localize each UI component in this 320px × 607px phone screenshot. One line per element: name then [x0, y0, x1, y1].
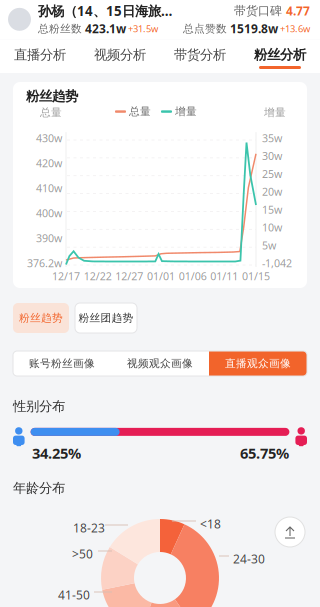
- staticText: 12/17: [52, 269, 80, 283]
- staticText: +13.6w: [278, 22, 310, 35]
- staticText: 孙杨（14、15日海旅…: [38, 2, 172, 20]
- button[interactable]: 粉丝趋势: [13, 303, 69, 333]
- staticText: 视频分析: [94, 47, 146, 63]
- staticText: 带货口碑: [234, 3, 286, 18]
- staticText: 视频观众画像: [127, 357, 193, 370]
- staticText: 15w: [262, 202, 282, 217]
- button[interactable]: 粉丝分析: [240, 40, 320, 73]
- staticText: 12/27: [115, 269, 143, 283]
- button[interactable]: 带货分析: [160, 40, 240, 73]
- staticText: 01/15: [242, 269, 270, 283]
- staticText: 直播分析: [14, 47, 66, 63]
- staticText: 1519.8w: [230, 21, 278, 37]
- staticText: 390w: [36, 231, 62, 245]
- button[interactable]: 直播分析: [0, 40, 80, 73]
- staticText: 30w: [262, 149, 282, 163]
- staticText: 430w: [36, 131, 62, 145]
- staticText: 总量: [40, 106, 62, 119]
- staticText: 400w: [36, 206, 62, 220]
- staticText: >50: [72, 546, 93, 562]
- button[interactable]: Back to top: [275, 517, 305, 547]
- staticText: 年龄分布: [13, 480, 65, 496]
- staticText: 账号粉丝画像: [29, 357, 95, 370]
- staticText: 增量: [264, 106, 286, 119]
- staticText: 420w: [36, 156, 62, 170]
- staticText: 粉丝趋势: [26, 88, 78, 104]
- staticText: 10w: [262, 220, 282, 234]
- button[interactable]: 视频分析: [80, 40, 160, 73]
- staticText: <18: [200, 516, 221, 532]
- staticText: 18-23: [73, 520, 105, 536]
- staticText: 65.75%: [240, 443, 289, 463]
- staticText: 性别分布: [13, 398, 65, 414]
- staticText: 24-30: [233, 551, 265, 567]
- staticText: 粉丝分析: [254, 47, 306, 63]
- staticText: 423.1w: [85, 21, 126, 37]
- staticText: 带货分析: [174, 47, 226, 63]
- staticText: 01/01: [147, 269, 175, 283]
- staticText: 34.25%: [32, 443, 81, 463]
- staticText: 4.77: [286, 3, 310, 19]
- staticText: +31.5w: [126, 22, 158, 35]
- staticText: -1,042: [262, 256, 292, 270]
- staticText: 25w: [262, 167, 282, 181]
- staticText: 直播观众画像: [225, 357, 291, 370]
- staticText: 增量: [175, 105, 197, 118]
- staticText: 20w: [262, 185, 282, 199]
- button[interactable]: 账号粉丝画像: [13, 351, 111, 376]
- button[interactable]: 直播观众画像: [209, 351, 307, 376]
- staticText: 35w: [262, 131, 282, 145]
- staticText: 376.2w: [27, 256, 62, 270]
- staticText: 总量: [129, 105, 151, 118]
- staticText: 粉丝团趋势: [78, 311, 133, 325]
- staticText: 410w: [36, 181, 62, 195]
- staticText: 01/06: [179, 269, 207, 283]
- staticText: 01/11: [210, 269, 238, 283]
- staticText: 41-50: [58, 587, 90, 603]
- staticText: 总点赞数: [183, 22, 230, 35]
- staticText: 粉丝趋势: [19, 311, 63, 325]
- staticText: 总粉丝数: [38, 22, 85, 35]
- staticText: 5w: [262, 238, 276, 252]
- button[interactable]: 视频观众画像: [111, 351, 209, 376]
- button[interactable]: 粉丝团趋势: [75, 303, 137, 333]
- staticText: 12/22: [84, 269, 112, 283]
